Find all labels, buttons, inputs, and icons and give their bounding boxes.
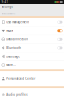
staticText: Data usage xyxy=(6,55,20,58)
staticText: Bluetooth xyxy=(6,46,21,50)
staticText: Audio profiles xyxy=(6,93,27,96)
staticText: WLAN xyxy=(6,29,13,32)
staticText: USB management xyxy=(6,20,29,24)
button[interactable]: Audio profiles xyxy=(0,88,64,100)
staticText: Wireless & networks xyxy=(1,13,15,15)
staticText: Personalized Center xyxy=(6,77,35,80)
button[interactable]: More... xyxy=(0,61,64,69)
button[interactable]: Bluetooth xyxy=(0,44,64,52)
button[interactable]: Data connection xyxy=(0,35,64,43)
button[interactable]: Personalized Center xyxy=(0,71,64,86)
button[interactable]: Data usage xyxy=(0,52,64,61)
staticText: Data connection xyxy=(6,38,28,41)
button[interactable]: USB management xyxy=(0,18,64,26)
staticText: More... xyxy=(6,63,16,67)
staticText: 9:41 xyxy=(1,0,8,4)
button[interactable]: WLAN xyxy=(0,27,64,35)
staticText: Settings xyxy=(1,5,12,8)
